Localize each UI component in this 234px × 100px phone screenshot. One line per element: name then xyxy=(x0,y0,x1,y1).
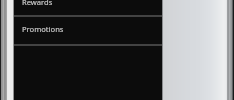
staticText: Rewards xyxy=(22,0,53,7)
staticText: Promotions xyxy=(22,24,64,34)
button[interactable]: Rewards xyxy=(14,0,162,15)
button[interactable]: Promotions xyxy=(14,17,162,44)
